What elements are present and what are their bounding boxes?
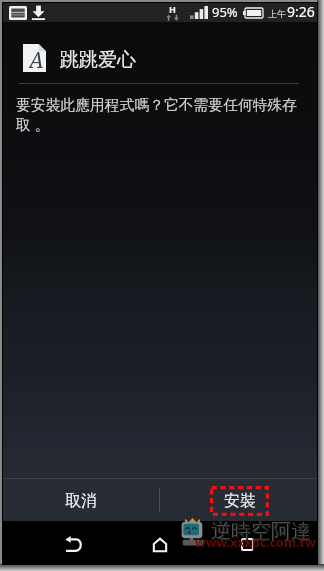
button[interactable]: Back	[51, 521, 95, 564]
staticText: A	[29, 46, 44, 74]
staticText: 跳跳爱心	[60, 48, 136, 72]
button[interactable]: 取消	[3, 478, 159, 521]
staticText: 逆時空阿達	[212, 520, 312, 545]
staticText: 安裝	[224, 491, 256, 511]
staticText: 上午	[268, 8, 286, 19]
staticText: www.xxxpc.com.tw	[195, 534, 316, 551]
button[interactable]: A	[3, 22, 317, 83]
staticText: 要安裝此應用程式嗎？它不需要任何特殊存取 。	[16, 96, 305, 134]
button[interactable]: Home	[138, 521, 182, 564]
button[interactable]: 安裝	[160, 478, 317, 521]
staticText: H	[169, 3, 176, 15]
staticText: 9:26	[287, 2, 315, 21]
button[interactable]: Recent apps	[225, 521, 269, 564]
staticText: 95%	[212, 3, 238, 21]
staticText: 逆時空阿達	[211, 519, 311, 544]
staticText: 取消	[65, 491, 97, 511]
